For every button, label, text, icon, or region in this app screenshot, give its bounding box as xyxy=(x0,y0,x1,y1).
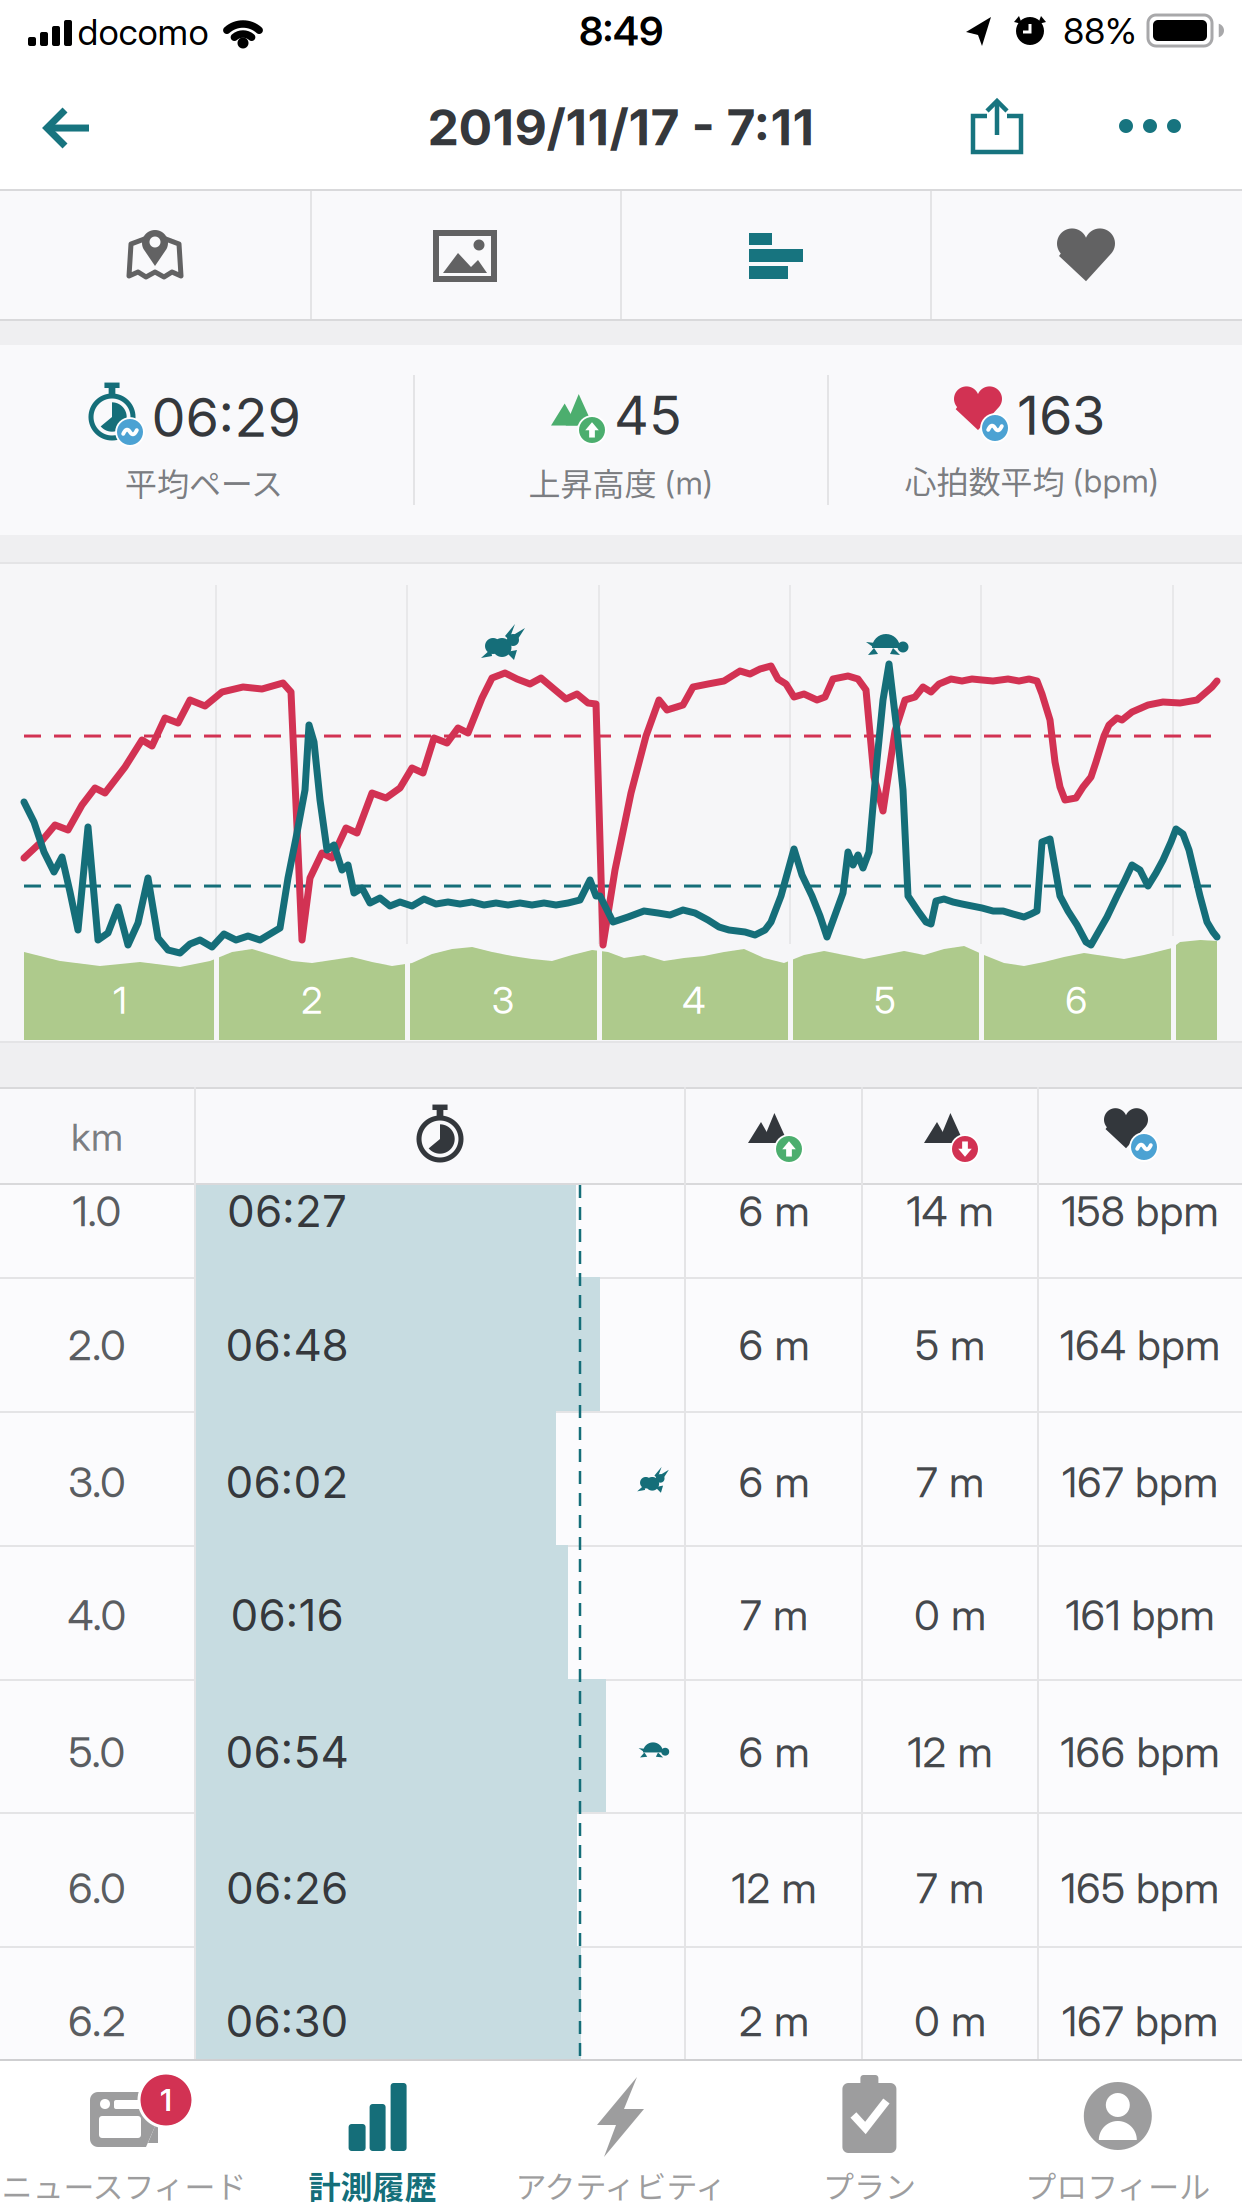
staticText: 5.0 xyxy=(68,1727,125,1777)
staticText: 167 bpm xyxy=(1062,1457,1218,1507)
staticText: 上昇高度 (m) xyxy=(528,459,713,505)
staticText: 158 bpm xyxy=(1061,1186,1218,1236)
staticText: 7 m xyxy=(916,1863,984,1913)
staticText: 3.0 xyxy=(68,1457,126,1507)
staticText: 5 xyxy=(874,977,896,1023)
staticText: 2 xyxy=(301,977,323,1023)
staticText: 45 xyxy=(614,382,682,448)
button[interactable]: Profile xyxy=(994,2059,1242,2208)
staticText: 5 m xyxy=(915,1320,985,1370)
staticText: 06:02 xyxy=(225,1455,348,1509)
button[interactable]: History xyxy=(249,2059,497,2208)
staticText: 4 xyxy=(682,977,706,1023)
staticText: 6.2 xyxy=(68,1996,126,2046)
staticText: docomo xyxy=(77,10,208,54)
staticText: 161 bpm xyxy=(1065,1590,1214,1640)
staticText: 計測履歴 xyxy=(309,2162,437,2208)
staticText: 88% xyxy=(1063,9,1137,53)
button[interactable]: Heart rate xyxy=(933,193,1239,319)
staticText: 2019/11/17 - 7:11 xyxy=(427,97,814,157)
staticText: 14 m xyxy=(906,1186,993,1236)
staticText: 06:48 xyxy=(225,1318,348,1372)
staticText: 0 m xyxy=(914,1590,986,1640)
staticText: 06:54 xyxy=(225,1725,348,1779)
staticText: 6 m xyxy=(738,1457,809,1507)
staticText: プロフィール xyxy=(1025,2163,1210,2207)
staticText: 167 bpm xyxy=(1062,1996,1218,2046)
staticText: km xyxy=(71,1114,123,1160)
staticText: 166 bpm xyxy=(1060,1727,1219,1777)
staticText: 8:49 xyxy=(579,7,663,55)
staticText: 6 m xyxy=(738,1320,809,1370)
staticText: 2.0 xyxy=(68,1320,126,1370)
staticText: 7 m xyxy=(740,1590,808,1640)
staticText: 心拍数平均 (bpm) xyxy=(904,457,1159,503)
button[interactable]: Plan xyxy=(745,2059,993,2208)
button[interactable]: More xyxy=(1119,119,1181,133)
staticText: 4.0 xyxy=(67,1590,126,1640)
button[interactable]: News feed xyxy=(0,2059,248,2208)
staticText: 6.0 xyxy=(68,1863,126,1913)
staticText: 06:29 xyxy=(151,384,300,450)
staticText: 1 xyxy=(160,2082,172,2118)
staticText: 06:26 xyxy=(226,1861,348,1915)
staticText: 平均ペース xyxy=(125,459,283,505)
staticText: 7 m xyxy=(916,1457,984,1507)
staticText: 163 xyxy=(1017,382,1105,448)
staticText: 6 m xyxy=(738,1186,809,1236)
staticText: プラン xyxy=(823,2163,916,2207)
staticText: 12 m xyxy=(731,1863,816,1913)
staticText: 06:27 xyxy=(227,1184,347,1238)
staticText: ニュースフィード xyxy=(1,2163,246,2207)
staticText: 164 bpm xyxy=(1060,1320,1220,1370)
staticText: 1.0 xyxy=(72,1186,121,1236)
button[interactable]: Photos xyxy=(312,193,618,319)
staticText: 12 m xyxy=(907,1727,992,1777)
button[interactable]: Share xyxy=(971,99,1023,155)
staticText: 3 xyxy=(491,977,514,1023)
button[interactable]: Back xyxy=(43,107,91,149)
staticText: 06:30 xyxy=(225,1994,348,2048)
staticText: 6 xyxy=(1065,977,1087,1023)
staticText: アクティビティ xyxy=(515,2163,726,2207)
staticText: 165 bpm xyxy=(1061,1863,1219,1913)
staticText: 0 m xyxy=(914,1996,986,2046)
button[interactable]: Splits xyxy=(623,193,929,319)
staticText: 1 xyxy=(113,977,127,1023)
staticText: 06:16 xyxy=(230,1588,343,1642)
button[interactable]: Map xyxy=(2,193,308,319)
button[interactable]: Activity xyxy=(497,2059,745,2208)
staticText: 2 m xyxy=(739,1996,809,2046)
staticText: 6 m xyxy=(738,1727,809,1777)
